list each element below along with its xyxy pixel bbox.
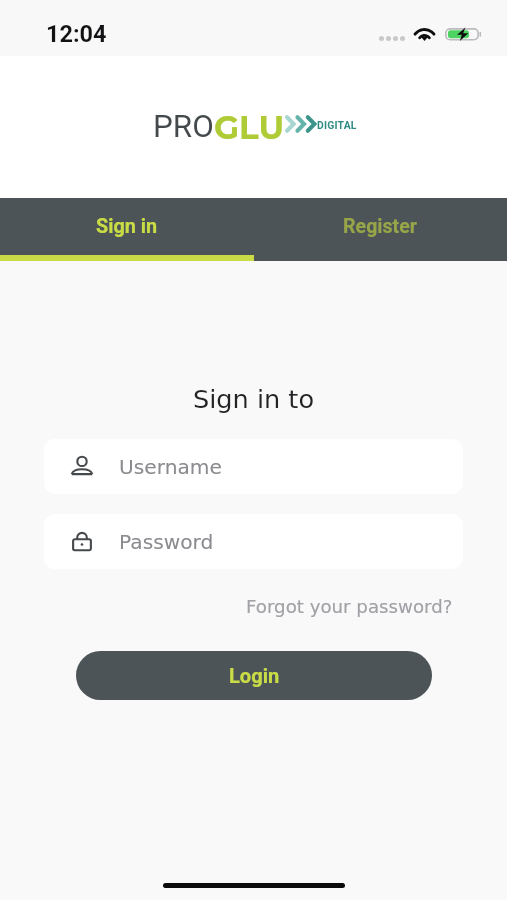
button[interactable]: Password: [44, 514, 463, 569]
button[interactable]: Login: [76, 651, 432, 700]
staticText: Sign in: [96, 215, 158, 238]
other: Wi-Fi: [412, 23, 437, 41]
staticText: GLU: [214, 108, 285, 140]
other: Password: [70, 529, 94, 554]
staticText: DIGITAL: [317, 119, 357, 131]
staticText: Password: [119, 530, 214, 554]
staticText: Forgot your password?: [246, 596, 453, 617]
other: Battery charging: [445, 28, 482, 42]
other: Cellular signal: [379, 36, 405, 41]
staticText: Register: [343, 215, 417, 238]
staticText: 12:04: [46, 20, 107, 48]
staticText: Username: [119, 455, 222, 479]
staticText: PRO: [153, 108, 214, 140]
other: Username: [70, 454, 94, 479]
staticText: Sign in to: [0, 384, 507, 414]
button[interactable]: Forgot your password?: [242, 591, 457, 622]
button[interactable]: Sign in: [0, 198, 253, 261]
button[interactable]: Username: [44, 439, 463, 494]
button[interactable]: Register: [253, 198, 507, 261]
staticText: Login: [229, 664, 280, 688]
